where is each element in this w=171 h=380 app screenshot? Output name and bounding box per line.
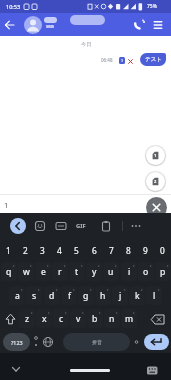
button[interactable]: f [61, 286, 77, 305]
button[interactable] [131, 17, 147, 33]
staticText: y [92, 266, 97, 278]
staticText: n [109, 313, 115, 325]
button[interactable]: g [78, 286, 94, 305]
button[interactable] [33, 219, 47, 233]
staticText: s [32, 290, 37, 302]
button[interactable] [129, 219, 143, 233]
staticText: e [41, 266, 46, 278]
button[interactable] [146, 197, 167, 218]
button[interactable] [2, 17, 18, 33]
staticText: 10:53 [6, 3, 21, 10]
button[interactable]: 0 [154, 240, 171, 260]
staticText: 6 [92, 245, 97, 256]
button[interactable] [10, 218, 26, 234]
button[interactable] [0, 195, 145, 213]
staticText: p [160, 266, 166, 278]
staticText: z [25, 313, 30, 325]
staticText: SMS [46, 24, 55, 29]
button[interactable]: 8 [120, 240, 137, 260]
staticText: a [15, 290, 20, 302]
button[interactable] [70, 369, 110, 372]
button[interactable]: 9 [137, 240, 154, 260]
staticText: 1 [4, 200, 9, 210]
button[interactable]: p [155, 262, 171, 281]
staticText: q [6, 266, 12, 278]
staticText: x [42, 313, 47, 325]
button[interactable]: n [104, 309, 120, 328]
button[interactable]: y [86, 262, 102, 281]
staticText: ?123 [11, 339, 23, 346]
button[interactable]: r [52, 262, 68, 281]
button[interactable] [144, 334, 169, 350]
button[interactable] [148, 310, 168, 329]
button[interactable]: 2 [146, 172, 165, 191]
button[interactable]: z [19, 309, 35, 328]
staticText: v [76, 313, 81, 325]
staticText: 3 [40, 245, 45, 256]
staticText: テスト [145, 56, 162, 63]
staticText: u [108, 266, 114, 278]
button[interactable] [131, 333, 142, 351]
staticText: 1 [6, 245, 11, 256]
staticText: o [143, 266, 149, 278]
button[interactable]: h [95, 286, 111, 305]
staticText: 1 [154, 153, 157, 158]
staticText: 0 [160, 245, 165, 256]
button[interactable]: t [69, 262, 85, 281]
staticText: 1 [121, 58, 124, 63]
button[interactable]: 3 [34, 240, 51, 260]
button[interactable]: l [146, 286, 162, 305]
button[interactable]: ?123 [3, 333, 30, 351]
staticText: g [83, 290, 89, 302]
button[interactable] [99, 219, 113, 233]
staticText: d [49, 290, 55, 302]
staticText: m [125, 313, 134, 325]
button[interactable] [151, 17, 167, 33]
button[interactable]: a [9, 286, 25, 305]
staticText: 2 [23, 245, 28, 256]
button[interactable]: s [26, 286, 42, 305]
button[interactable] [31, 333, 41, 351]
button[interactable] [2, 310, 19, 329]
staticText: 拼音 [92, 339, 102, 345]
button[interactable] [24, 16, 42, 34]
button[interactable]: e [35, 262, 51, 281]
button[interactable] [8, 361, 24, 377]
button[interactable]: 2 [17, 240, 34, 260]
button[interactable]: 1 [0, 240, 17, 260]
button[interactable]: q [1, 262, 17, 281]
staticText: f [68, 290, 71, 302]
button[interactable] [54, 219, 68, 233]
button[interactable]: 6 [86, 240, 103, 260]
staticText: t [75, 266, 79, 278]
button[interactable]: x [36, 309, 52, 328]
staticText: c [59, 313, 64, 325]
button[interactable]: 4 [51, 240, 68, 260]
button[interactable]: d [44, 286, 60, 305]
button[interactable]: 7 [103, 240, 120, 260]
staticText: i [128, 266, 131, 278]
button[interactable]: k [129, 286, 145, 305]
button[interactable]: 1 [146, 146, 165, 165]
button[interactable]: 5 [68, 240, 85, 260]
button[interactable]: b [87, 309, 103, 328]
button[interactable]: m [121, 309, 137, 328]
staticText: 06:48 [101, 57, 113, 63]
staticText: 8 [126, 245, 131, 256]
button[interactable]: 拼音 [63, 333, 130, 351]
staticText: 75% [147, 3, 157, 10]
button[interactable]: テスト [140, 53, 166, 66]
button[interactable] [40, 334, 56, 350]
button[interactable]: j [112, 286, 128, 305]
staticText: l [153, 290, 156, 302]
staticText: 4 [57, 245, 62, 256]
button[interactable]: u [103, 262, 119, 281]
staticText: 今日 [81, 41, 92, 48]
button[interactable]: c [53, 309, 69, 328]
button[interactable] [143, 362, 161, 378]
button[interactable]: GIF [73, 218, 89, 234]
button[interactable]: i [121, 262, 137, 281]
button[interactable]: o [138, 262, 154, 281]
button[interactable]: w [18, 262, 34, 281]
button[interactable]: v [70, 309, 86, 328]
